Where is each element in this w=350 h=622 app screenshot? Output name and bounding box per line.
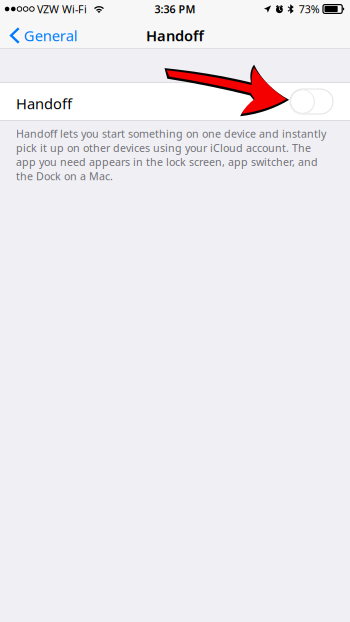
staticText: Handoff lets you start something on one … xyxy=(16,126,326,183)
staticText: Handoff xyxy=(146,26,204,45)
button[interactable]: Back to General xyxy=(0,18,86,48)
staticText: 3:36 PM xyxy=(154,2,195,16)
staticText: VZW Wi-Fi xyxy=(37,2,87,16)
staticText: Handoff xyxy=(16,94,72,113)
staticText: 73% xyxy=(299,2,320,16)
button[interactable]: Handoff xyxy=(0,83,350,120)
staticText: General xyxy=(24,26,78,45)
